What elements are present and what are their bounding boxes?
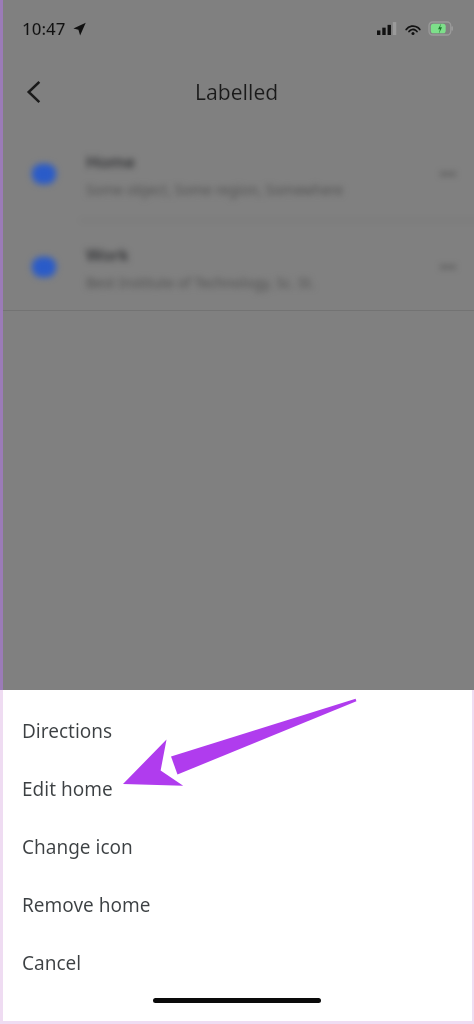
staticText: Labelled xyxy=(195,78,279,107)
staticText: Some object, Some region, Somewhere xyxy=(86,180,344,199)
staticText: Edit home xyxy=(22,776,113,802)
staticText: Home xyxy=(86,150,135,173)
button[interactable]: Edit home xyxy=(0,760,474,818)
staticText: Work xyxy=(86,243,129,266)
button[interactable]: Remove home xyxy=(0,876,474,934)
staticText: Change icon xyxy=(22,834,133,860)
staticText: 10:47 xyxy=(22,17,66,40)
staticText: Best Institute of Technology, Sc. St. xyxy=(86,273,315,292)
staticText: Cancel xyxy=(22,950,82,976)
button[interactable]: Home xyxy=(0,128,474,220)
button[interactable]: Change icon xyxy=(0,818,474,876)
button[interactable]: Directions xyxy=(0,702,474,760)
button[interactable]: Cancel xyxy=(0,934,474,992)
staticText: Directions xyxy=(22,718,113,744)
button[interactable]: Work xyxy=(0,221,474,313)
staticText: Remove home xyxy=(22,892,151,918)
button[interactable]: Back xyxy=(10,68,58,116)
